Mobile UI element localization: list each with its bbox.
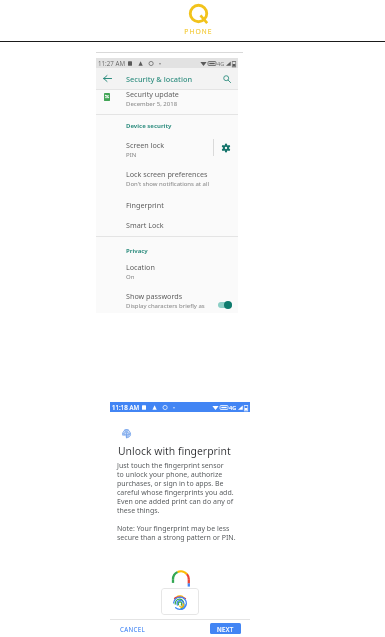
button[interactable]: Screen lock [96, 140, 238, 158]
button[interactable]: Fingerprint [96, 198, 238, 212]
button[interactable]: Lock screen preferences [96, 169, 238, 187]
staticText: CANCEL [120, 625, 145, 633]
staticText: Lock screen preferences [126, 169, 208, 179]
staticText: Location [126, 262, 155, 272]
staticText: 11:27 AM [98, 59, 125, 67]
staticText: Note: Your fingerprint may be less secur… [117, 524, 243, 542]
staticText: 4G [229, 404, 237, 411]
staticText: Security update [126, 89, 179, 99]
staticText: On [126, 273, 135, 280]
staticText: Privacy [126, 247, 148, 255]
button[interactable]: Search [220, 72, 233, 85]
staticText: PIN [126, 151, 137, 158]
staticText: 4G [217, 60, 225, 67]
button[interactable]: Smart Lock [96, 218, 238, 232]
button[interactable]: Security & location [126, 68, 193, 89]
button[interactable]: Back [101, 72, 114, 85]
button[interactable]: Screen lock settings [221, 143, 231, 153]
button[interactable]: NEXT [210, 623, 241, 634]
staticText: Just touch the fingerprint sensor to unl… [117, 461, 235, 515]
button[interactable]: Show passwords [96, 291, 238, 309]
staticText: Screen lock [126, 140, 165, 150]
staticText: Display characters briefly as [126, 302, 205, 309]
button[interactable]: Location [96, 262, 238, 280]
staticText: NEXT [217, 625, 234, 633]
staticText: 11:18 AM [112, 403, 139, 411]
staticText: Show passwords [126, 291, 183, 301]
staticText: PHONE [184, 27, 213, 36]
staticText: Security & location [126, 74, 193, 84]
staticText: Unlock with fingerprint [118, 444, 231, 458]
staticText: Smart Lock [126, 220, 164, 230]
staticText: Device security [126, 122, 172, 130]
button[interactable]: Show passwords toggle [217, 300, 233, 309]
button[interactable]: Security update [96, 90, 238, 114]
staticText: December 5, 2018 [126, 100, 178, 108]
staticText: Don't show notifications at all [126, 180, 210, 187]
button[interactable]: CANCEL [116, 623, 149, 635]
staticText: Fingerprint [126, 200, 164, 210]
